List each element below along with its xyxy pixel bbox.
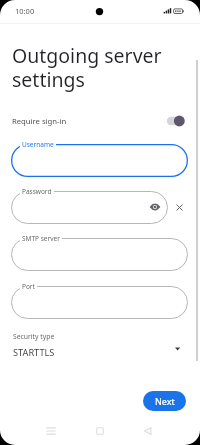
staticText: 10:00 (15, 6, 35, 16)
button[interactable]: Password (11, 191, 168, 224)
button[interactable]: Require sign-in (165, 114, 185, 128)
button[interactable]: Clear password (172, 200, 187, 215)
staticText: Port (22, 282, 35, 291)
button[interactable]: Recent apps (41, 421, 61, 441)
button[interactable]: SMTP server (11, 238, 188, 271)
button[interactable]: Show password (148, 200, 162, 214)
button[interactable]: Next (143, 391, 186, 411)
staticText: STARTTLS (13, 346, 55, 359)
button[interactable]: Back (138, 421, 158, 441)
button[interactable]: Security type (0, 326, 200, 362)
staticText: Security type (13, 332, 55, 341)
staticText: SMTP server (22, 234, 60, 243)
staticText: Outgoing server settings (12, 42, 162, 93)
button[interactable]: Port (11, 286, 188, 319)
button[interactable]: Require sign-in (0, 109, 200, 133)
button[interactable]: Home (90, 421, 110, 441)
staticText: Require sign-in (12, 116, 67, 126)
staticText: Next (155, 395, 175, 407)
button[interactable]: Username (11, 144, 188, 177)
staticText: Username (22, 140, 54, 149)
staticText: Password (22, 187, 52, 196)
button[interactable]: Select security type (170, 342, 185, 357)
